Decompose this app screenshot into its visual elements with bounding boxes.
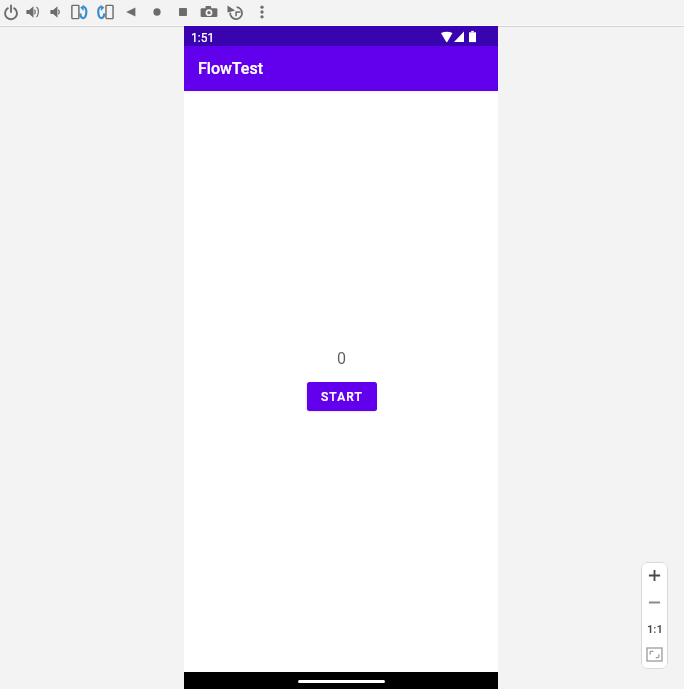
button[interactable]: Back (120, 1, 142, 23)
button[interactable]: Zoom out (641, 589, 668, 616)
staticText: 1:1 (647, 623, 663, 636)
staticText: FlowTest (198, 59, 263, 78)
button[interactable]: History (224, 1, 246, 23)
staticText: 1:51 (191, 31, 215, 45)
staticText: START (321, 390, 363, 404)
button[interactable]: Overview (172, 1, 194, 23)
button[interactable]: Zoom in (641, 562, 668, 589)
staticText: 0 (337, 349, 346, 368)
button[interactable]: Power (0, 1, 22, 23)
button[interactable]: Volume down (46, 1, 68, 23)
button[interactable]: Rotate right (93, 1, 115, 23)
button[interactable]: Home (146, 1, 168, 23)
button[interactable]: 1:1 (641, 616, 668, 642)
button[interactable]: Home gesture (298, 680, 385, 683)
button[interactable]: START (307, 382, 377, 411)
button[interactable]: Volume up (22, 1, 44, 23)
button[interactable]: Fit to screen (641, 642, 668, 669)
button[interactable]: Screenshot (198, 1, 220, 23)
button[interactable]: Rotate left (70, 1, 92, 23)
button[interactable]: More (251, 1, 273, 23)
